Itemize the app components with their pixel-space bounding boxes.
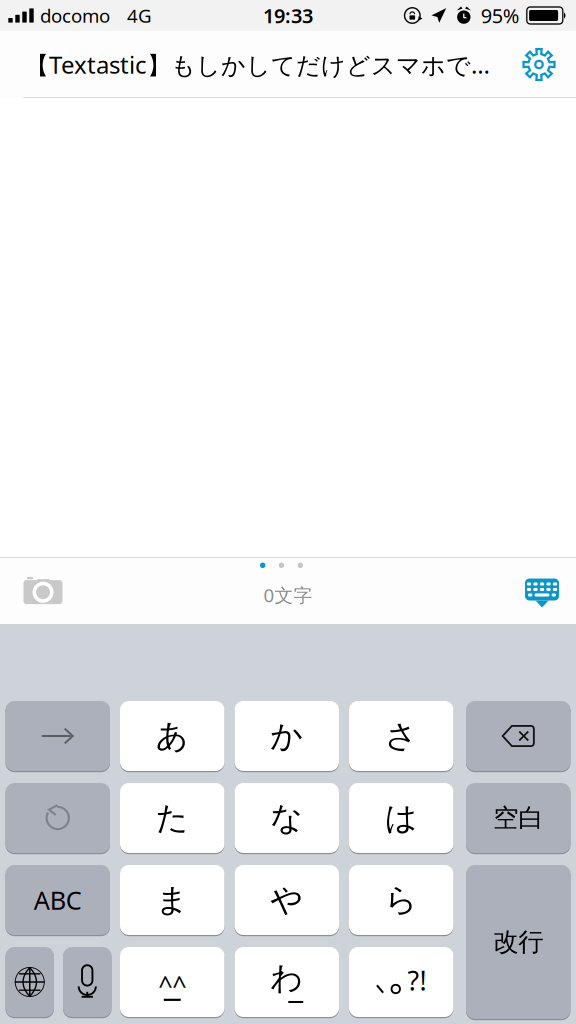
button[interactable]: Settings: [510, 31, 568, 98]
button[interactable]: な: [234, 783, 339, 853]
button[interactable]: や: [234, 865, 339, 935]
staticText: や: [270, 880, 303, 920]
staticText: ^^: [158, 968, 186, 1002]
button[interactable]: Delete: [466, 701, 570, 771]
button[interactable]: ?!: [349, 947, 453, 1017]
button[interactable]: Camera: [15, 568, 71, 612]
button[interactable]: 改行: [466, 865, 570, 1019]
button[interactable]: Dictation: [63, 947, 111, 1017]
staticText: ABC: [34, 883, 82, 917]
button[interactable]: さ: [349, 701, 453, 771]
button[interactable]: ま: [120, 865, 224, 935]
staticText: は: [385, 798, 418, 838]
button[interactable]: ABC: [5, 865, 110, 935]
staticText: わ: [270, 958, 303, 998]
button[interactable]: た: [120, 783, 224, 853]
button[interactable]: Hide keyboard: [516, 571, 568, 615]
button[interactable]: 空白: [466, 783, 570, 853]
button[interactable]: Undo: [5, 783, 110, 853]
staticText: ら: [385, 880, 418, 920]
staticText: 4G: [127, 3, 152, 28]
button[interactable]: ら: [349, 865, 453, 935]
staticText: ?!: [407, 963, 426, 998]
button[interactable]: Next candidate: [5, 701, 110, 771]
staticText: 0文字: [263, 583, 312, 607]
button[interactable]: あ: [120, 701, 224, 771]
button[interactable]: わ: [234, 947, 339, 1017]
button[interactable]: は: [349, 783, 453, 853]
staticText: ま: [156, 880, 189, 920]
staticText: な: [270, 798, 303, 838]
button[interactable]: か: [234, 701, 339, 771]
button[interactable]: Switch keyboard: [5, 947, 54, 1017]
staticText: 19:33: [263, 2, 313, 29]
button[interactable]: ^^: [120, 947, 224, 1017]
staticText: 空白: [493, 802, 543, 833]
staticText: た: [156, 798, 189, 838]
staticText: か: [270, 716, 303, 756]
staticText: 95%: [481, 2, 520, 29]
staticText: さ: [385, 716, 418, 756]
staticText: docomo: [40, 3, 110, 28]
staticText: 【Textastic】もしかしてだけどスマホで…: [25, 48, 490, 80]
staticText: あ: [156, 716, 189, 756]
staticText: 改行: [493, 926, 543, 957]
